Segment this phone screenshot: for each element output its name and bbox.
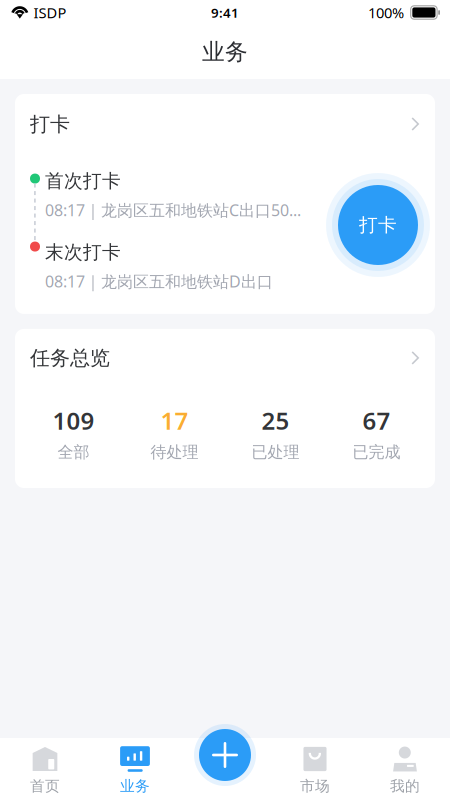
staticText: 末次打卡	[45, 241, 121, 264]
button[interactable]: 任务总览	[15, 329, 435, 370]
staticText: 全部	[57, 442, 89, 462]
staticText: 首次打卡	[45, 170, 121, 192]
button[interactable]: 业务	[90, 738, 180, 800]
staticText: 100%	[368, 3, 404, 22]
staticText: 67	[362, 404, 390, 436]
button[interactable]: 新增	[194, 724, 256, 786]
staticText: ISDP	[34, 3, 67, 22]
button[interactable]: 我的	[360, 738, 450, 800]
staticText: 已处理	[251, 442, 299, 462]
staticText: 打卡	[359, 213, 397, 236]
button[interactable]: 打卡	[326, 173, 430, 277]
button[interactable]: 67	[326, 404, 427, 462]
staticText: 市场	[300, 777, 330, 795]
staticText: 08:17｜龙岗区五和地铁站C出口50...	[45, 199, 301, 221]
staticText: 17	[160, 404, 188, 436]
staticText: 25	[261, 404, 289, 436]
staticText: 9:41	[211, 4, 239, 21]
staticText: 首页	[30, 777, 60, 795]
staticText: 我的	[390, 777, 420, 795]
button[interactable]: 打卡	[15, 94, 435, 170]
button[interactable]: 市场	[270, 738, 360, 800]
staticText: 待处理	[150, 442, 198, 462]
staticText: 已完成	[352, 442, 400, 462]
button[interactable]: 25	[225, 404, 326, 462]
staticText: 任务总览	[30, 346, 110, 370]
staticText: 业务	[120, 777, 150, 795]
button[interactable]: 17	[124, 404, 225, 462]
staticText: 08:17｜龙岗区五和地铁站D出口	[45, 271, 273, 292]
button[interactable]: 109	[23, 404, 124, 462]
staticText: 打卡	[30, 112, 70, 137]
staticText: 109	[52, 404, 94, 436]
staticText: 业务	[202, 38, 248, 66]
button[interactable]: 首页	[0, 738, 90, 800]
